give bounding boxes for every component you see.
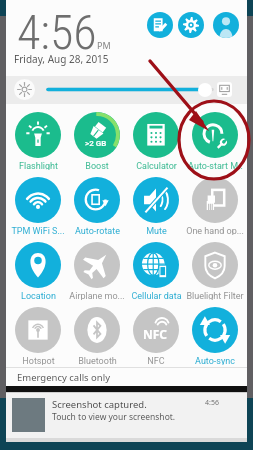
staticText: Cellular data	[131, 291, 182, 300]
staticText: 4:56	[205, 398, 219, 408]
staticText: Auto-rotate	[75, 226, 120, 235]
staticText: NFC	[147, 356, 165, 365]
staticText: Auto-sync	[195, 356, 235, 365]
button[interactable]: Hotspot	[8, 307, 68, 365]
staticText: Flashlight	[19, 161, 58, 170]
button[interactable]: TPM WiFi S...	[8, 177, 68, 235]
button[interactable]: NFC	[126, 307, 186, 365]
staticText: PM	[97, 39, 111, 51]
button[interactable]: Auto-start M..	[185, 112, 245, 170]
button[interactable]: Flashlight	[8, 112, 68, 170]
button[interactable]: >2 GB	[67, 112, 127, 170]
button[interactable]: Bluelight Filter	[185, 242, 245, 300]
staticText: Hotspot	[22, 356, 55, 365]
staticText: Location	[21, 291, 56, 300]
staticText: Touch to view your screenshot.	[52, 411, 176, 423]
staticText: One hand op...	[186, 226, 244, 235]
button[interactable]: Edit quick settings	[147, 12, 173, 38]
staticText: TPM WiFi S...	[11, 226, 65, 235]
button[interactable]: Cellular data	[126, 242, 186, 300]
staticText: 4:56	[17, 4, 97, 60]
button[interactable]: Auto-sync	[185, 307, 245, 365]
staticText: >2 GB	[85, 139, 107, 148]
button[interactable]: Airplane mo...	[67, 242, 127, 300]
button[interactable]: Brightness	[14, 79, 35, 100]
staticText: Bluelight Filter	[186, 291, 244, 300]
button[interactable]: Calculator	[126, 112, 186, 170]
staticText: Auto-start M..	[188, 161, 243, 170]
staticText: Friday, Aug 28, 2015	[14, 52, 109, 66]
staticText: Airplane mo...	[69, 291, 125, 300]
button[interactable]: Brightness level	[198, 83, 212, 97]
staticText: Bluetooth	[78, 356, 117, 365]
button[interactable]: Bluetooth	[67, 307, 127, 365]
button[interactable]: One hand op...	[185, 177, 245, 235]
button[interactable]: Mute	[126, 177, 186, 235]
staticText: Emergency calls only	[17, 371, 111, 384]
staticText: Boost	[85, 161, 109, 170]
button[interactable]: Auto-rotate	[67, 177, 127, 235]
button[interactable]: Settings	[178, 12, 204, 38]
staticText: Mute	[146, 226, 167, 235]
button[interactable]: Auto brightness	[217, 82, 232, 97]
staticText: Calculator	[136, 161, 177, 170]
staticText: NFC	[143, 326, 168, 342]
staticText: Screenshot captured.	[52, 398, 147, 411]
button[interactable]: User profile	[213, 12, 239, 38]
button[interactable]: Location	[8, 242, 68, 300]
